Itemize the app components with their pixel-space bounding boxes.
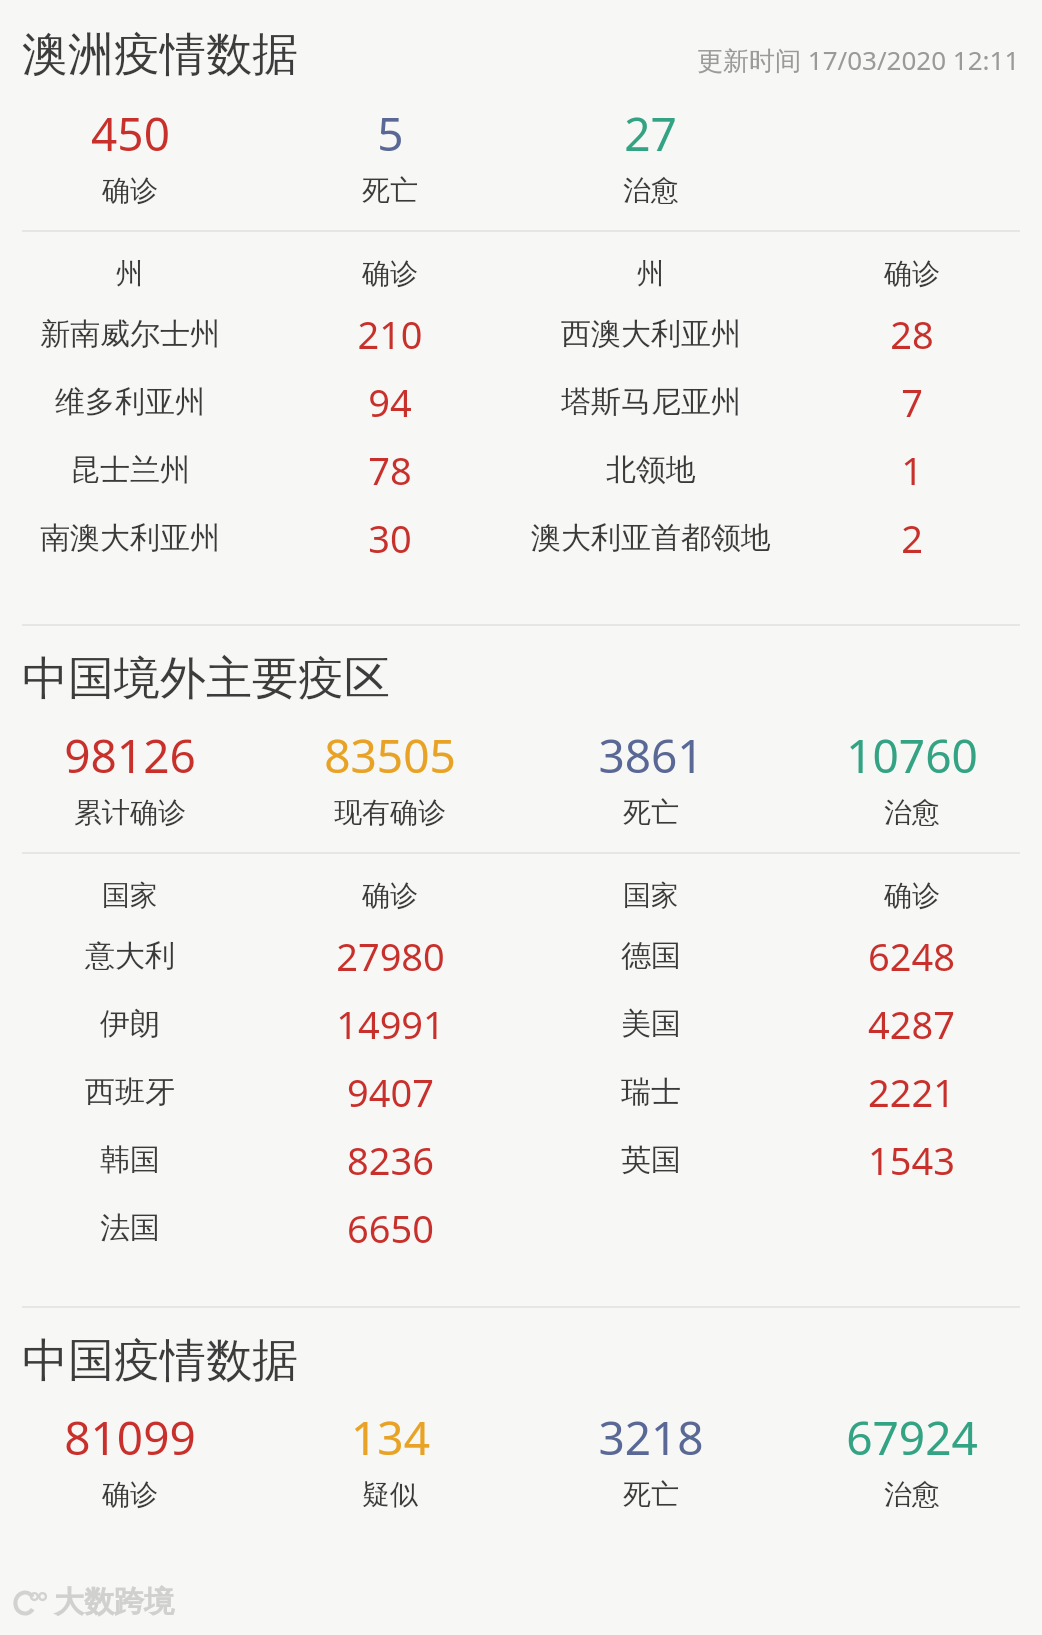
button[interactable]: 83505 [260, 724, 520, 830]
staticText: 伊朗 [100, 1005, 160, 1043]
button[interactable]: 意大利 [0, 922, 1042, 990]
button[interactable]: 450 [0, 102, 260, 208]
staticText: 西班牙 [85, 1073, 175, 1111]
staticText: 134 [351, 1406, 430, 1469]
staticText: 确诊 [884, 256, 940, 291]
button[interactable]: 法国 [0, 1194, 1042, 1262]
button[interactable]: 98126 [0, 724, 260, 830]
staticText: 大数跨境 [54, 1583, 174, 1621]
staticText: 瑞士 [621, 1073, 681, 1111]
staticText: 98126 [64, 724, 196, 787]
staticText: 南澳大利亚州 [40, 519, 220, 557]
staticText: 8236 [347, 1134, 434, 1186]
staticText: 死亡 [362, 173, 418, 208]
staticText: 14991 [336, 998, 445, 1050]
staticText: 确诊 [362, 256, 418, 291]
staticText: 治愈 [884, 1477, 940, 1512]
staticText: 67924 [846, 1406, 978, 1469]
staticText: 州 [637, 256, 665, 291]
staticText: 韩国 [100, 1141, 160, 1179]
staticText: 5 [377, 102, 404, 165]
button[interactable]: 5 [260, 102, 520, 208]
staticText: 83505 [324, 724, 456, 787]
staticText: 意大利 [85, 937, 175, 975]
staticText: 国家 [102, 878, 158, 913]
staticText: 94 [368, 376, 412, 428]
button[interactable]: 昆士兰州 [0, 436, 1042, 504]
staticText: 昆士兰州 [70, 451, 190, 489]
staticText: 确诊 [884, 878, 940, 913]
staticText: 7 [901, 376, 923, 428]
staticText: 210 [357, 308, 423, 360]
button[interactable]: 西班牙 [0, 1058, 1042, 1126]
button[interactable]: 中国境外主要疫区 [22, 650, 390, 708]
staticText: 英国 [621, 1141, 681, 1179]
button[interactable]: 澳洲疫情数据 [22, 26, 298, 84]
staticText: 西澳大利亚州 [561, 315, 741, 353]
staticText: 2 [901, 512, 923, 564]
staticText: 3218 [598, 1406, 704, 1469]
staticText: 州 [116, 256, 144, 291]
staticText: 1543 [868, 1134, 955, 1186]
staticText: 塔斯马尼亚州 [561, 383, 741, 421]
staticText: 27 [624, 102, 677, 165]
staticText: 德国 [621, 937, 681, 975]
button[interactable]: 南澳大利亚州 [0, 504, 1042, 572]
staticText: 法国 [100, 1209, 160, 1247]
button[interactable]: 3218 [520, 1406, 781, 1512]
staticText: 新南威尔士州 [40, 315, 220, 353]
staticText: 4287 [868, 998, 955, 1050]
staticText: 2221 [868, 1066, 955, 1118]
staticText: 27980 [336, 930, 445, 982]
button[interactable]: 大数跨境 watermark [14, 1583, 174, 1621]
staticText: 3861 [598, 724, 704, 787]
staticText: 6650 [347, 1202, 434, 1254]
staticText: 78 [368, 444, 412, 496]
staticText: 疑似 [362, 1477, 418, 1512]
button[interactable]: 新南威尔士州 [0, 300, 1042, 368]
staticText: 死亡 [623, 795, 679, 830]
staticText: 更新时间 17/03/2020 12:11 [697, 42, 1020, 78]
staticText: 30 [368, 512, 412, 564]
staticText: 维多利亚州 [55, 383, 205, 421]
staticText: 北领地 [606, 451, 696, 489]
staticText: 治愈 [884, 795, 940, 830]
staticText: 国家 [623, 878, 679, 913]
button[interactable]: 维多利亚州 [0, 368, 1042, 436]
button[interactable]: 韩国 [0, 1126, 1042, 1194]
button[interactable]: 67924 [781, 1406, 1042, 1512]
staticText: 确诊 [102, 173, 158, 208]
button[interactable]: 81099 [0, 1406, 260, 1512]
staticText: 现有确诊 [334, 795, 446, 830]
staticText: 累计确诊 [74, 795, 186, 830]
staticText: 澳大利亚首都领地 [531, 519, 771, 557]
staticText: 6248 [868, 930, 955, 982]
staticText: 死亡 [623, 1477, 679, 1512]
staticText: 450 [91, 102, 170, 165]
staticText: 28 [890, 308, 934, 360]
staticText: 1 [901, 444, 923, 496]
staticText: 10760 [846, 724, 978, 787]
button[interactable]: 134 [260, 1406, 520, 1512]
staticText: 确诊 [102, 1477, 158, 1512]
staticText: 确诊 [362, 878, 418, 913]
button[interactable]: 中国疫情数据 [22, 1332, 298, 1390]
button[interactable]: 27 [520, 102, 781, 208]
staticText: 治愈 [623, 173, 679, 208]
staticText: 9407 [347, 1066, 434, 1118]
button[interactable]: 3861 [520, 724, 781, 830]
staticText: 81099 [64, 1406, 196, 1469]
button[interactable]: 10760 [781, 724, 1042, 830]
button[interactable]: 伊朗 [0, 990, 1042, 1058]
staticText: 美国 [621, 1005, 681, 1043]
